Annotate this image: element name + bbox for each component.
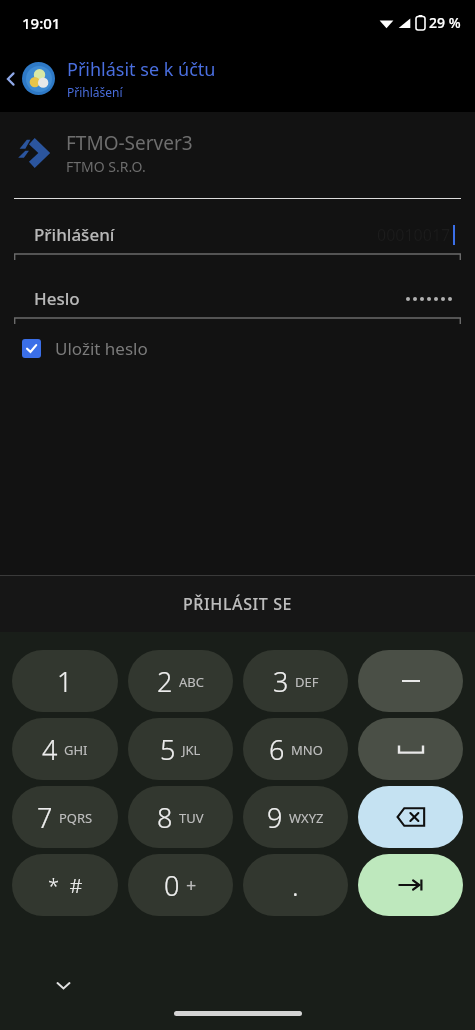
button[interactable]: Backspace [358,786,463,848]
staticText: 5 [160,731,176,768]
button[interactable]: Space [358,718,463,780]
staticText: 1 [57,663,73,700]
button[interactable]: 1 [12,650,118,712]
staticText: 4 [42,731,58,768]
staticText: 9 [267,799,283,836]
staticText: 8 [157,799,173,836]
button[interactable]: 8 [128,786,233,848]
staticText: Přihlášení [34,223,115,246]
staticText: DEF [295,673,319,691]
staticText: GHI [64,741,88,759]
button[interactable]: Back [0,45,22,112]
button[interactable]: Dash [358,650,463,712]
staticText: FTMO S.R.O. [66,157,146,176]
staticText: PQRS [59,809,93,827]
staticText: 3 [273,663,289,700]
staticText: FTMO-Server3 [66,130,193,156]
button[interactable]: 9 [243,786,348,848]
staticText: Uložit heslo [55,337,148,360]
button[interactable]: 4 [12,718,118,780]
staticText: . [292,867,299,904]
button[interactable]: 2 [128,650,233,712]
staticText: ABC [179,673,204,691]
staticText: 6 [269,731,285,768]
staticText: MNO [291,741,323,759]
staticText: WXYZ [289,809,324,827]
button[interactable]: 0 [128,854,233,916]
button[interactable]: 5 [128,718,233,780]
staticText: 2 [157,663,173,700]
staticText: PŘIHLÁSIT SE [183,593,293,615]
staticText: JKL [182,741,201,759]
button[interactable]: 3 [243,650,348,712]
button[interactable]: Hide keyboard [50,972,76,998]
staticText: TUV [179,809,204,827]
button[interactable]: Přihlášení [14,223,461,261]
button[interactable]: 7 [12,786,118,848]
button[interactable]: Next field [358,854,463,916]
button[interactable]: 6 [243,718,348,780]
staticText: 7 [37,799,53,836]
button[interactable]: FTMO-Server3 [16,130,459,176]
staticText: + [186,873,197,898]
button[interactable]: Heslo [14,287,461,325]
button[interactable]: PŘIHLÁSIT SE [0,575,475,632]
button[interactable]: * # [12,854,118,916]
staticText: * # [48,872,83,899]
button[interactable]: Uložit heslo [22,337,475,360]
button[interactable]: . [243,854,348,916]
staticText: 0 [164,867,180,904]
staticText: Přihlášení [67,84,123,100]
staticText: 19:01 [22,13,61,33]
staticText: Přihlásit se k účtu [67,57,216,82]
staticText: Heslo [34,287,80,310]
staticText: 29 % [429,13,461,32]
